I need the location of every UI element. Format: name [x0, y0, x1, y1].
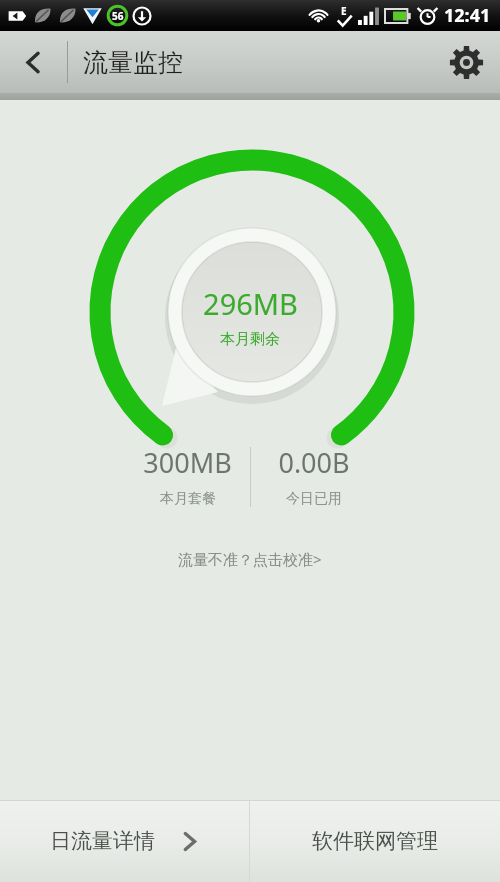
staticText: 今日已用 [286, 490, 342, 508]
button[interactable]: 软件联网管理 [250, 800, 500, 882]
button[interactable]: Settings [432, 31, 500, 93]
button[interactable]: 日流量详情 [0, 800, 249, 882]
staticText: 300MB [143, 444, 232, 481]
staticText: E [341, 4, 347, 18]
staticText: 流量监控 [83, 47, 183, 78]
staticText: 296MB [203, 284, 298, 323]
staticText: 日流量详情 [50, 828, 155, 854]
staticText: 软件联网管理 [312, 828, 438, 854]
staticText: 12:41 [444, 3, 491, 28]
staticText: 流量不准？点击校准> [178, 549, 322, 569]
button[interactable]: Back [0, 31, 67, 93]
staticText: 本月剩余 [220, 330, 280, 349]
staticText: 本月套餐 [160, 490, 216, 508]
staticText: 0.00B [278, 444, 350, 481]
staticText: 56 [112, 9, 124, 23]
button[interactable]: 流量不准？点击校准> [164, 542, 336, 576]
